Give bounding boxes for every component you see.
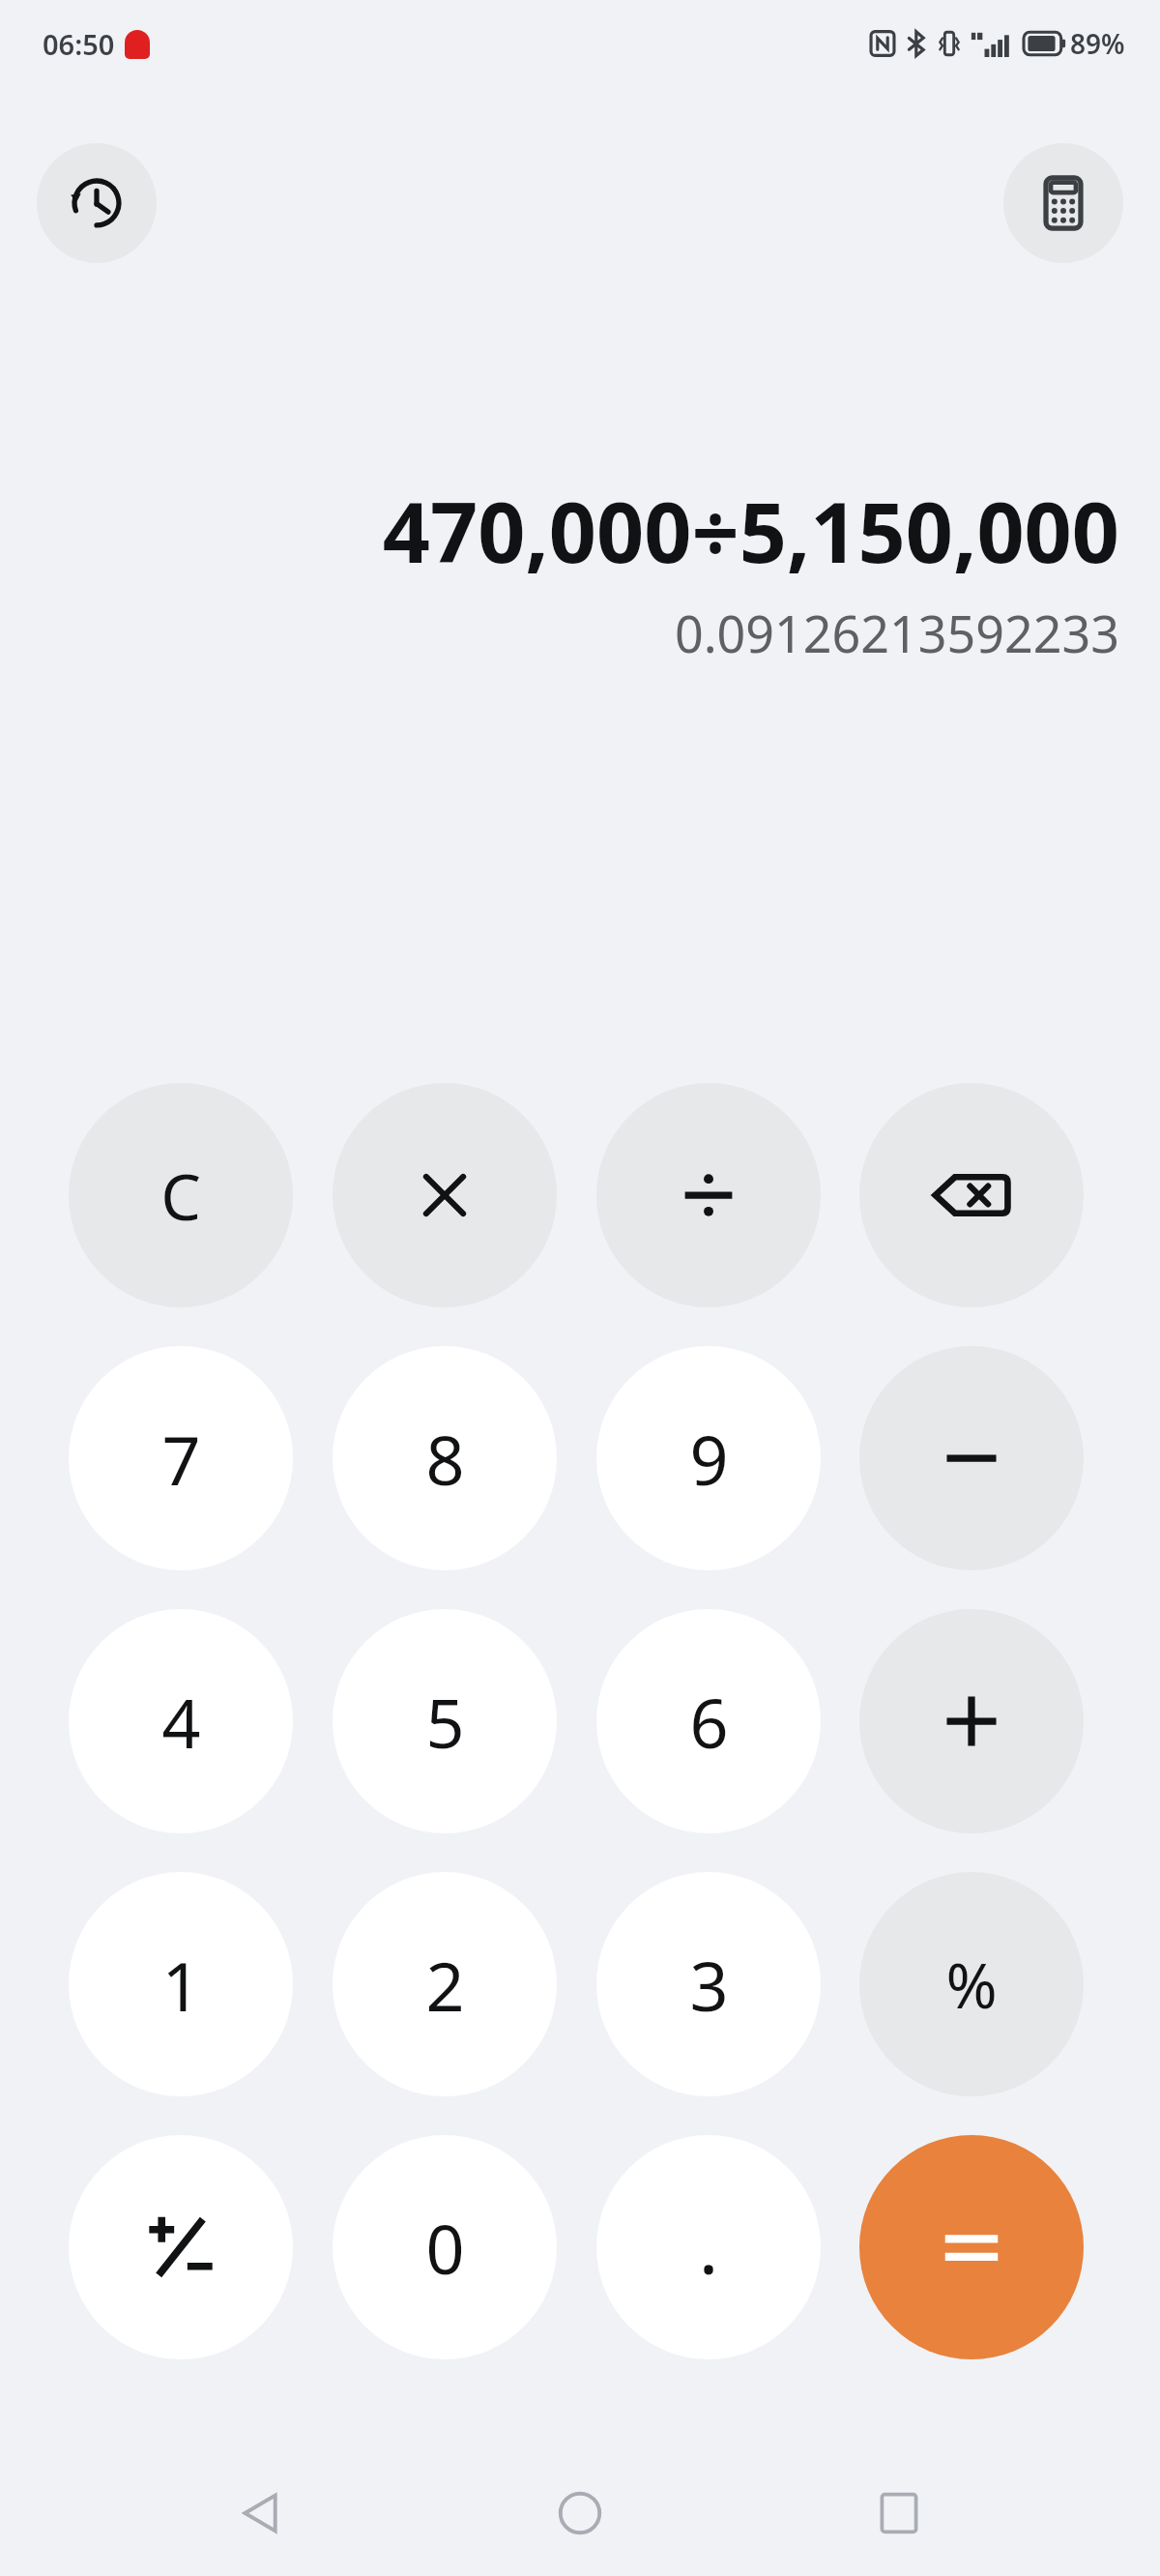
button[interactable]: Scientific calculator xyxy=(1003,143,1123,263)
staticText: 0.09126213592233 xyxy=(674,599,1119,667)
staticText: % xyxy=(945,1943,998,2027)
staticText: 4 xyxy=(161,1676,201,1768)
staticText: C xyxy=(160,1152,201,1239)
staticText: 7 xyxy=(161,1413,201,1505)
button[interactable]: Back xyxy=(203,2455,319,2571)
staticText: . xyxy=(699,2202,718,2294)
button[interactable]: History xyxy=(37,143,157,263)
button[interactable]: 2 xyxy=(333,1872,557,2096)
button[interactable]: 4 xyxy=(69,1609,293,1833)
staticText: 470,000÷5,150,000 xyxy=(382,474,1119,587)
button[interactable]: Backspace xyxy=(859,1083,1084,1307)
button[interactable]: C xyxy=(69,1083,293,1307)
staticText: 0 xyxy=(425,2202,465,2294)
button[interactable]: % xyxy=(859,1872,1084,2096)
button[interactable]: Equals xyxy=(859,2135,1084,2359)
staticText: 89% xyxy=(1070,25,1125,62)
button[interactable]: Home xyxy=(522,2455,638,2571)
staticText: 6 xyxy=(689,1676,729,1768)
button[interactable]: . xyxy=(596,2135,821,2359)
staticText: 8 xyxy=(425,1413,465,1505)
button[interactable]: 7 xyxy=(69,1346,293,1570)
button[interactable]: Plus xyxy=(859,1609,1084,1833)
button[interactable]: Multiply xyxy=(333,1083,557,1307)
button[interactable]: 9 xyxy=(596,1346,821,1570)
staticText: 5 xyxy=(425,1676,465,1768)
button[interactable]: 8 xyxy=(333,1346,557,1570)
button[interactable]: 3 xyxy=(596,1872,821,2096)
staticText: 9 xyxy=(689,1413,729,1505)
staticText: 2 xyxy=(425,1939,465,2031)
button[interactable]: 5 xyxy=(333,1609,557,1833)
button[interactable]: 1 xyxy=(69,1872,293,2096)
button[interactable]: Toggle sign xyxy=(69,2135,293,2359)
button[interactable]: Minus xyxy=(859,1346,1084,1570)
button[interactable]: 6 xyxy=(596,1609,821,1833)
staticText: 1 xyxy=(161,1939,201,2031)
button[interactable]: Divide xyxy=(596,1083,821,1307)
button[interactable]: Recent apps xyxy=(841,2455,957,2571)
button[interactable]: 0 xyxy=(333,2135,557,2359)
staticText: 06:50 xyxy=(43,25,115,63)
staticText: 3 xyxy=(689,1939,729,2031)
